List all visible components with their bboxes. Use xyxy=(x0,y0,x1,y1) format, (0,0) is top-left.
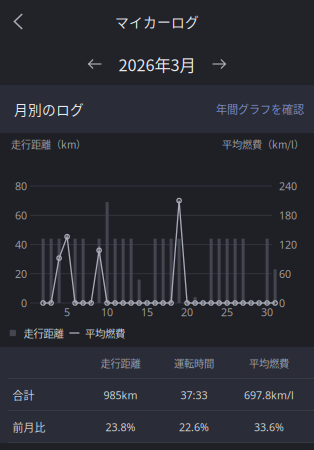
staticText: 走行距離（km） xyxy=(11,137,86,151)
staticText: 23.8% xyxy=(105,420,135,434)
staticText: 40 xyxy=(15,237,27,252)
staticText: 年間グラフを確認 xyxy=(216,101,304,117)
staticText: 運転時間 xyxy=(174,356,214,370)
staticText: 5 xyxy=(64,305,70,319)
button[interactable]: 年間グラフを確認 xyxy=(216,95,314,123)
staticText: 180 xyxy=(279,208,297,222)
staticText: 80 xyxy=(15,179,27,193)
staticText: 平均燃費 xyxy=(249,356,289,370)
staticText: 15 xyxy=(141,305,153,319)
staticText: マイカーログ xyxy=(115,12,199,31)
staticText: 20 xyxy=(181,305,193,319)
staticText: 前月比 xyxy=(12,419,45,435)
staticText: 平均燃費 xyxy=(85,325,125,341)
staticText: 22.6% xyxy=(179,420,209,434)
staticText: 0 xyxy=(21,296,27,310)
staticText: 合計 xyxy=(12,387,34,403)
staticText: 60 xyxy=(279,267,291,281)
staticText: 697.8km/l xyxy=(244,388,294,402)
staticText: 10 xyxy=(101,305,113,319)
staticText: 60 xyxy=(15,208,27,222)
staticText: 0 xyxy=(279,296,285,310)
staticText: 240 xyxy=(279,179,297,193)
staticText: 走行距離 xyxy=(23,325,63,341)
button[interactable]: Previous month xyxy=(78,49,111,78)
staticText: 月別のログ xyxy=(14,99,84,119)
button[interactable]: Next month xyxy=(202,49,235,78)
staticText: 33.6% xyxy=(254,420,284,434)
staticText: 120 xyxy=(279,237,297,252)
staticText: 2026年3月 xyxy=(118,52,195,76)
staticText: 25 xyxy=(221,305,233,319)
staticText: 985km xyxy=(103,388,137,402)
staticText: 30 xyxy=(261,305,273,319)
staticText: 走行距離 xyxy=(100,356,140,370)
button[interactable]: Back xyxy=(0,2,39,41)
staticText: 平均燃費（km/l） xyxy=(222,137,304,151)
staticText: 37:33 xyxy=(180,388,207,402)
staticText: 20 xyxy=(15,267,27,281)
